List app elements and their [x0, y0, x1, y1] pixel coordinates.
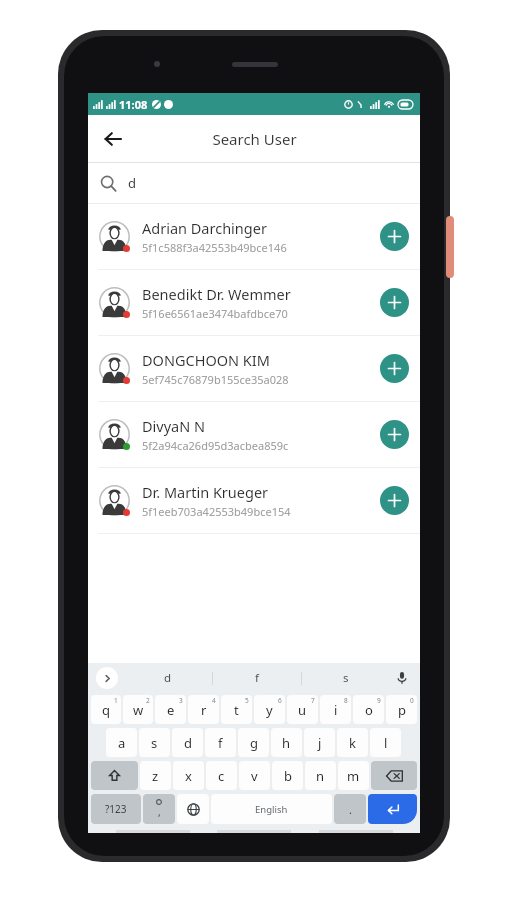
button[interactable]: Add user	[380, 288, 409, 317]
button[interactable]: v	[239, 761, 270, 790]
button[interactable]: Back	[95, 121, 131, 157]
staticText: 11:08	[119, 97, 148, 112]
button[interactable]: g	[238, 728, 269, 757]
staticText: .	[349, 802, 352, 817]
staticText: 8	[344, 696, 348, 705]
staticText: b	[284, 767, 292, 785]
staticText: 5ef745c76879b155ce35a028	[142, 372, 289, 387]
button[interactable]: DONGCHOON KIM	[88, 336, 420, 401]
button[interactable]: i	[320, 695, 351, 724]
staticText: d	[128, 174, 136, 192]
staticText: x	[185, 767, 192, 785]
staticText: Dr. Martin Krueger	[142, 482, 269, 502]
button[interactable]: c	[206, 761, 237, 790]
button[interactable]: Enter	[368, 794, 417, 824]
staticText: z	[152, 767, 159, 785]
staticText: j	[318, 734, 322, 752]
button[interactable]: Dr. Martin Krueger	[88, 468, 420, 533]
staticText: n	[316, 767, 325, 785]
staticText: 9	[377, 696, 381, 705]
staticText: m	[347, 767, 360, 785]
button[interactable]: Backspace	[371, 761, 417, 790]
button[interactable]: ?123	[91, 794, 141, 824]
staticText: d	[164, 670, 172, 686]
staticText: 0	[410, 696, 414, 705]
button[interactable]: h	[271, 728, 302, 757]
staticText: 2	[146, 696, 150, 705]
staticText: ?123	[105, 802, 127, 816]
button[interactable]: Expand toolbar	[96, 667, 118, 689]
button[interactable]: p	[386, 695, 417, 724]
button[interactable]: d	[172, 728, 203, 757]
staticText: t	[234, 701, 239, 719]
staticText: ,	[158, 805, 161, 819]
button[interactable]: m	[338, 761, 369, 790]
button[interactable]: w	[123, 695, 153, 724]
button[interactable]: DivyaN N	[88, 402, 420, 467]
staticText: a	[118, 734, 126, 752]
staticText: DivyaN N	[142, 416, 206, 436]
button[interactable]: z	[140, 761, 171, 790]
staticText: 7	[311, 696, 315, 705]
button[interactable]: Add user	[380, 420, 409, 449]
staticText: 4	[212, 696, 216, 705]
button[interactable]: Change language	[177, 794, 209, 824]
staticText: Benedikt Dr. Wemmer	[142, 284, 291, 304]
button[interactable]: Adrian Darchinger	[88, 204, 420, 269]
staticText: 3	[179, 696, 183, 705]
button[interactable]: Add user	[380, 354, 409, 383]
staticText: k	[349, 734, 356, 752]
button[interactable]: e	[155, 695, 186, 724]
button[interactable]: f	[205, 728, 236, 757]
button[interactable]: s	[139, 728, 170, 757]
staticText: c	[218, 767, 225, 785]
button[interactable]: Benedikt Dr. Wemmer	[88, 270, 420, 335]
button[interactable]: l	[370, 728, 401, 757]
button[interactable]: s	[302, 663, 390, 693]
staticText: g	[250, 734, 258, 752]
staticText: d	[184, 734, 192, 752]
staticText: i	[334, 701, 338, 719]
button[interactable]: t	[221, 695, 252, 724]
staticText: DONGCHOON KIM	[142, 350, 270, 370]
button[interactable]: n	[305, 761, 336, 790]
button[interactable]: x	[173, 761, 204, 790]
staticText: f	[218, 734, 223, 752]
button[interactable]: o	[353, 695, 384, 724]
button[interactable]: Comma, emoji	[143, 794, 175, 824]
staticText: u	[298, 701, 307, 719]
staticText: o	[365, 701, 373, 719]
staticText: q	[102, 701, 110, 719]
staticText: h	[282, 734, 291, 752]
staticText: 5f16e6561ae3474bafdbce70	[142, 306, 288, 321]
button[interactable]: q	[91, 695, 121, 724]
button[interactable]: Shift	[91, 761, 138, 790]
button[interactable]: Voice input	[392, 668, 412, 688]
button[interactable]: k	[337, 728, 368, 757]
staticText: English	[255, 803, 288, 816]
staticText: 6	[278, 696, 282, 705]
button[interactable]: j	[304, 728, 335, 757]
staticText: Search User	[212, 129, 297, 149]
button[interactable]: f	[213, 663, 301, 693]
staticText: e	[167, 701, 175, 719]
staticText: 5f2a94ca26d95d3acbea859c	[142, 438, 289, 453]
staticText: p	[398, 701, 406, 719]
staticText: l	[384, 734, 388, 752]
staticText: v	[251, 767, 258, 785]
button[interactable]: English	[211, 794, 332, 824]
button[interactable]: b	[272, 761, 303, 790]
button[interactable]: a	[106, 728, 137, 757]
staticText: 5f1eeb703a42553b49bce154	[142, 504, 291, 519]
button[interactable]: Add user	[380, 486, 409, 515]
button[interactable]: .	[334, 794, 366, 824]
staticText: w	[133, 701, 144, 719]
button[interactable]: d	[124, 663, 212, 693]
button[interactable]: Add user	[380, 222, 409, 251]
staticText: Adrian Darchinger	[142, 218, 267, 238]
button[interactable]: u	[287, 695, 318, 724]
button[interactable]: y	[254, 695, 285, 724]
button[interactable]: d	[88, 163, 420, 203]
staticText: y	[266, 701, 273, 719]
button[interactable]: r	[188, 695, 219, 724]
